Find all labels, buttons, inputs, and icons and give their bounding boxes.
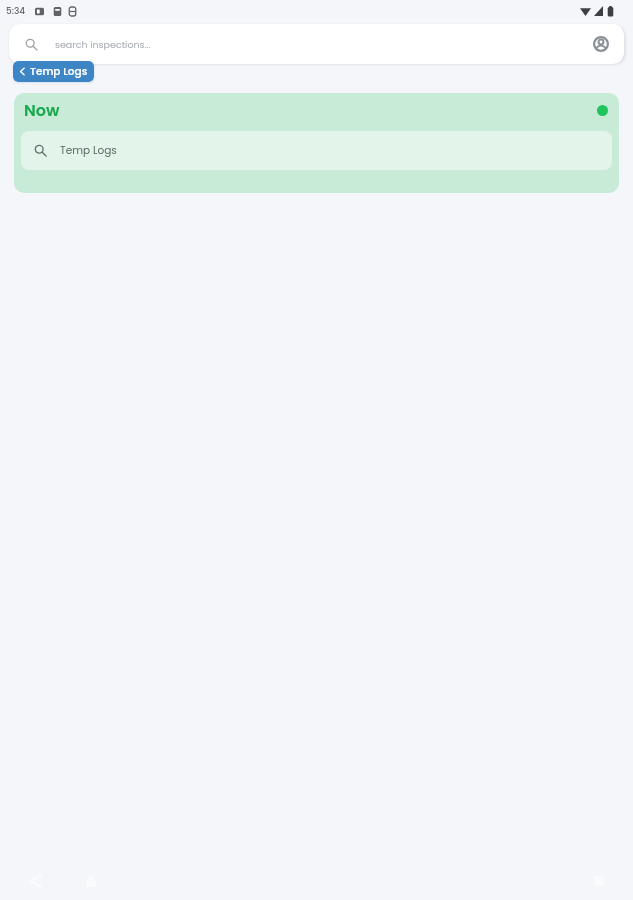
- button[interactable]: Account: [590, 33, 612, 55]
- button[interactable]: Now: [14, 93, 619, 193]
- button[interactable]: Temp Logs: [21, 131, 612, 170]
- button[interactable]: Temp Logs: [13, 61, 94, 82]
- staticText: 5:34: [6, 5, 26, 18]
- staticText: Now: [24, 99, 60, 121]
- staticText: search inspections...: [55, 38, 151, 51]
- staticText: Temp Logs: [60, 143, 117, 158]
- staticText: Temp Logs: [30, 64, 88, 79]
- button[interactable]: search inspections...: [9, 24, 624, 64]
